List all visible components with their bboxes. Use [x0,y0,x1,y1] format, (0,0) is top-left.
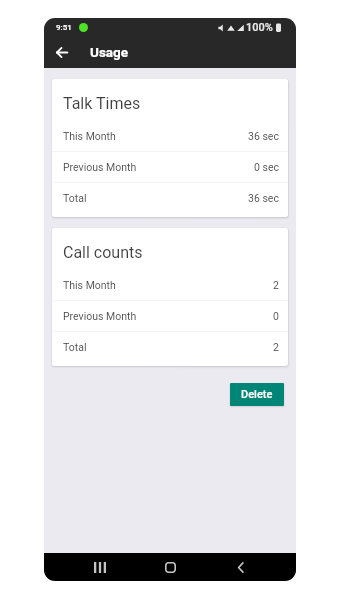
staticText: Call counts [63,243,143,262]
staticText: This Month [63,130,116,142]
staticText: 9:51 [56,23,72,32]
staticText: Total [63,192,87,204]
button[interactable]: Back [44,36,80,68]
staticText: Delete [241,388,273,401]
staticText: 0 sec [254,161,279,173]
staticText: 100% [246,21,273,34]
staticText: Talk Times [63,94,141,113]
staticText: 36 sec [248,130,279,142]
staticText: 36 sec [248,192,279,204]
staticText: Previous Month [63,310,137,322]
staticText: 2 [273,279,279,291]
button[interactable]: Back [211,553,269,581]
staticText: Total [63,341,87,353]
staticText: This Month [63,279,116,291]
button[interactable]: Delete [230,383,284,406]
staticText: 0 [273,310,279,322]
button[interactable]: Recent apps [71,553,129,581]
staticText: 2 [273,341,279,353]
button[interactable]: Home [141,553,199,581]
staticText: Previous Month [63,161,137,173]
staticText: Usage [90,44,129,60]
